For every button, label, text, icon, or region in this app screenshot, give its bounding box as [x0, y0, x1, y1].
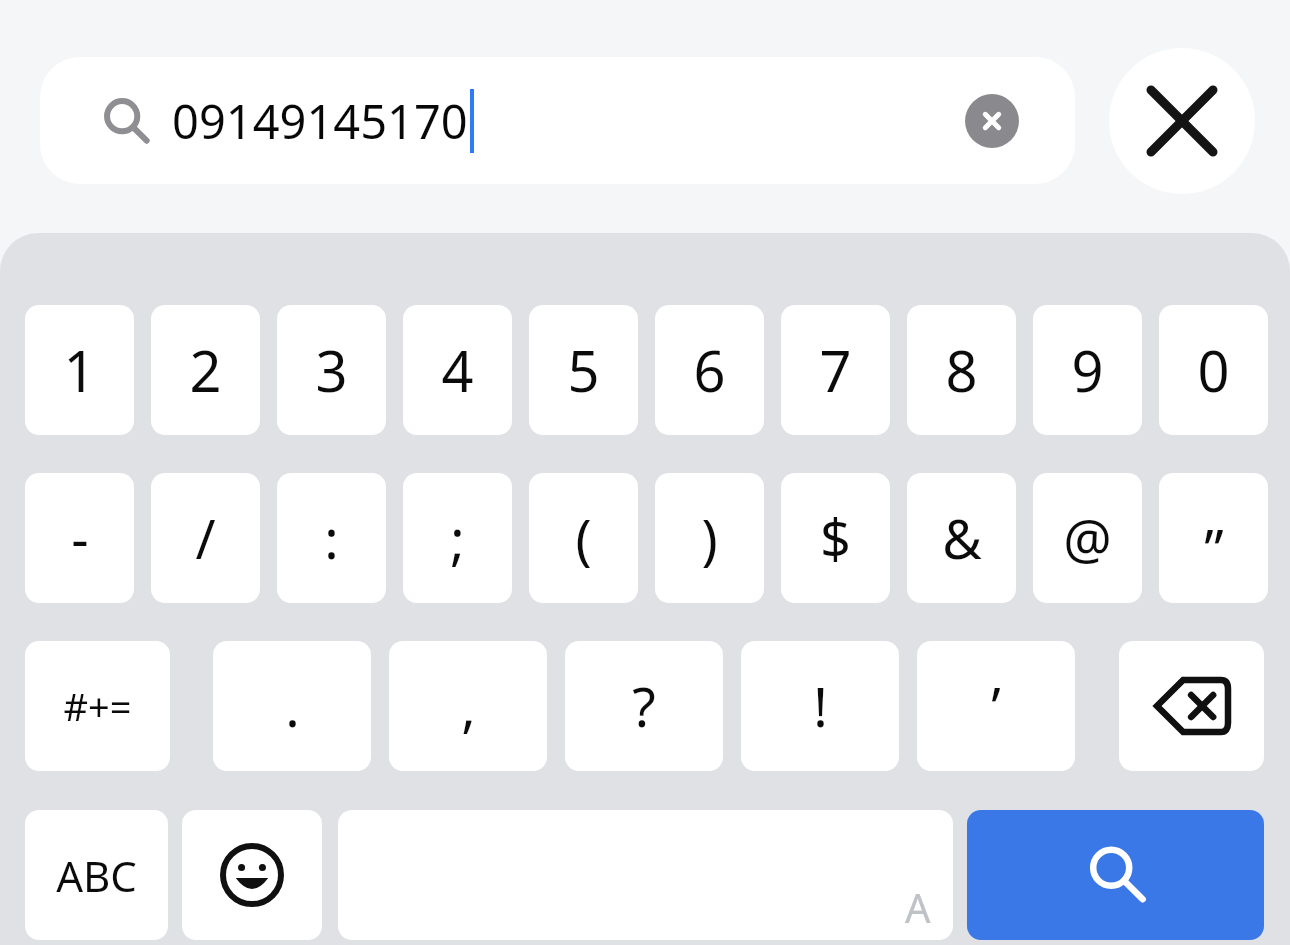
- staticText: .: [285, 669, 300, 743]
- staticText: @: [1063, 501, 1112, 575]
- staticText: 0: [1197, 332, 1230, 408]
- button[interactable]: Backspace: [1119, 641, 1264, 771]
- button[interactable]: Close search: [1109, 48, 1255, 194]
- staticText: ?: [632, 669, 656, 743]
- staticText: !: [813, 669, 828, 743]
- button[interactable]: ): [655, 473, 764, 603]
- staticText: -: [71, 501, 89, 575]
- staticText: ABC: [56, 847, 137, 904]
- staticText: ;: [450, 501, 465, 575]
- staticText: &: [942, 501, 982, 575]
- button[interactable]: 09149145170: [40, 57, 1075, 184]
- button[interactable]: 0: [1159, 305, 1268, 435]
- button[interactable]: 8: [907, 305, 1016, 435]
- button[interactable]: .: [213, 641, 371, 771]
- button[interactable]: $: [781, 473, 890, 603]
- staticText: ”: [1204, 511, 1224, 585]
- button[interactable]: 5: [529, 305, 638, 435]
- staticText: 09149145170: [172, 89, 468, 153]
- button[interactable]: 4: [403, 305, 512, 435]
- staticText: ): [701, 501, 718, 575]
- button[interactable]: (: [529, 473, 638, 603]
- staticText: $: [820, 501, 851, 575]
- staticText: 2: [189, 332, 222, 408]
- button[interactable]: ABC: [25, 810, 168, 940]
- button[interactable]: 1: [25, 305, 134, 435]
- button[interactable]: 6: [655, 305, 764, 435]
- button[interactable]: ’: [917, 641, 1075, 771]
- staticText: 4: [441, 332, 474, 408]
- staticText: 9: [1071, 332, 1104, 408]
- button[interactable]: #+=: [25, 641, 170, 771]
- staticText: #+=: [63, 680, 132, 732]
- button[interactable]: ;: [403, 473, 512, 603]
- button[interactable]: Emoji keyboard: [182, 810, 322, 940]
- button[interactable]: 9: [1033, 305, 1142, 435]
- button[interactable]: Search: [967, 810, 1264, 940]
- button[interactable]: &: [907, 473, 1016, 603]
- button[interactable]: Space: [338, 810, 953, 940]
- button[interactable]: ?: [565, 641, 723, 771]
- button[interactable]: -: [25, 473, 134, 603]
- staticText: 5: [567, 332, 600, 408]
- staticText: /: [195, 501, 216, 575]
- button[interactable]: /: [151, 473, 260, 603]
- staticText: 7: [819, 332, 852, 408]
- staticText: ,: [461, 669, 476, 743]
- staticText: A: [905, 880, 931, 934]
- staticText: ’: [991, 669, 1001, 743]
- button[interactable]: 2: [151, 305, 260, 435]
- staticText: (: [575, 501, 592, 575]
- button[interactable]: ”: [1159, 473, 1268, 603]
- staticText: 6: [693, 332, 726, 408]
- button[interactable]: !: [741, 641, 899, 771]
- staticText: 1: [63, 332, 96, 408]
- button[interactable]: 3: [277, 305, 386, 435]
- button[interactable]: @: [1033, 473, 1142, 603]
- button[interactable]: :: [277, 473, 386, 603]
- button[interactable]: 7: [781, 305, 890, 435]
- button[interactable]: Clear text: [965, 94, 1019, 148]
- staticText: :: [324, 501, 339, 575]
- button[interactable]: ,: [389, 641, 547, 771]
- staticText: 8: [945, 332, 978, 408]
- staticText: 3: [315, 332, 348, 408]
